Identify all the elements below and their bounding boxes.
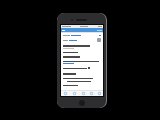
button[interactable]: Toolbar action 4 xyxy=(87,91,95,96)
button[interactable] xyxy=(62,28,102,32)
other: Sender avatar xyxy=(97,38,101,42)
button[interactable] xyxy=(63,35,101,36)
button[interactable] xyxy=(67,81,101,82)
button[interactable]: Toolbar action 1 xyxy=(61,91,70,96)
button[interactable]: Toolbar action 3 xyxy=(79,91,87,96)
button[interactable]: Toolbar action 5 xyxy=(95,91,103,96)
button[interactable]: Toolbar action 2 xyxy=(70,91,79,96)
